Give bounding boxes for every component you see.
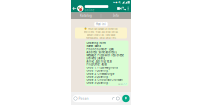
staticText: 18:21 bbox=[118, 82, 123, 85]
staticText: membacanya. Ketuk untuk info. bbox=[85, 36, 116, 39]
staticText: end-to-end. Tidak ada pihak ketiga, bbox=[83, 30, 118, 33]
staticText: Order 1: Pizza Margherita bbox=[86, 66, 117, 69]
staticText: 🔒 Pesan dan panggilan dienkripsi bbox=[84, 27, 118, 30]
staticText: Price/Offer: 40.00 bbox=[86, 63, 106, 66]
button[interactable]: Video call bbox=[117, 4, 122, 12]
staticText: Pesan bbox=[78, 96, 88, 101]
staticText: Delivery: Jalang bbox=[86, 57, 105, 60]
staticText: Info bbox=[113, 14, 119, 18]
staticText: ▾▴ bbox=[113, 1, 115, 4]
button[interactable]: Voice call bbox=[122, 4, 126, 12]
staticText: Address: Some address D bbox=[86, 50, 117, 54]
staticText: Ordering Form bbox=[86, 41, 105, 45]
staticText: 4G bbox=[118, 0, 121, 4]
button[interactable]: Info bbox=[101, 12, 131, 19]
staticText: ✓✓ bbox=[123, 82, 127, 85]
staticText: ● bbox=[116, 1, 118, 3]
staticText: Order 3: Chocolate Croissant bbox=[86, 78, 123, 81]
button[interactable]: Katalog bbox=[71, 12, 101, 19]
staticText: Order 2 Quantity: 1 bbox=[86, 75, 110, 78]
staticText: Phone number: 12345 bbox=[86, 47, 113, 51]
staticText: Message: Pizza with less cheese bbox=[86, 54, 123, 57]
staticText: Name: Sacha bbox=[86, 44, 100, 48]
staticText: Hari ini bbox=[96, 22, 106, 26]
staticText: online bbox=[85, 8, 94, 12]
button[interactable]: More options bbox=[126, 4, 130, 12]
staticText: bahkan WhatsApp, yang dapat bbox=[86, 33, 115, 36]
staticText: Order 3 Quantity: 1 bbox=[86, 81, 110, 85]
button[interactable]: Voice message bbox=[122, 95, 130, 102]
button[interactable]: Back bbox=[72, 4, 77, 12]
staticText: Order 1 Quantity: 1 bbox=[86, 69, 110, 72]
staticText: Katalog bbox=[80, 14, 92, 18]
staticText: Arrive: 2021-11-02 18:30 bbox=[86, 60, 111, 63]
button[interactable]: Contact profile photo bbox=[77, 4, 84, 12]
staticText: Order 2: Cheeseburger bbox=[86, 72, 114, 75]
